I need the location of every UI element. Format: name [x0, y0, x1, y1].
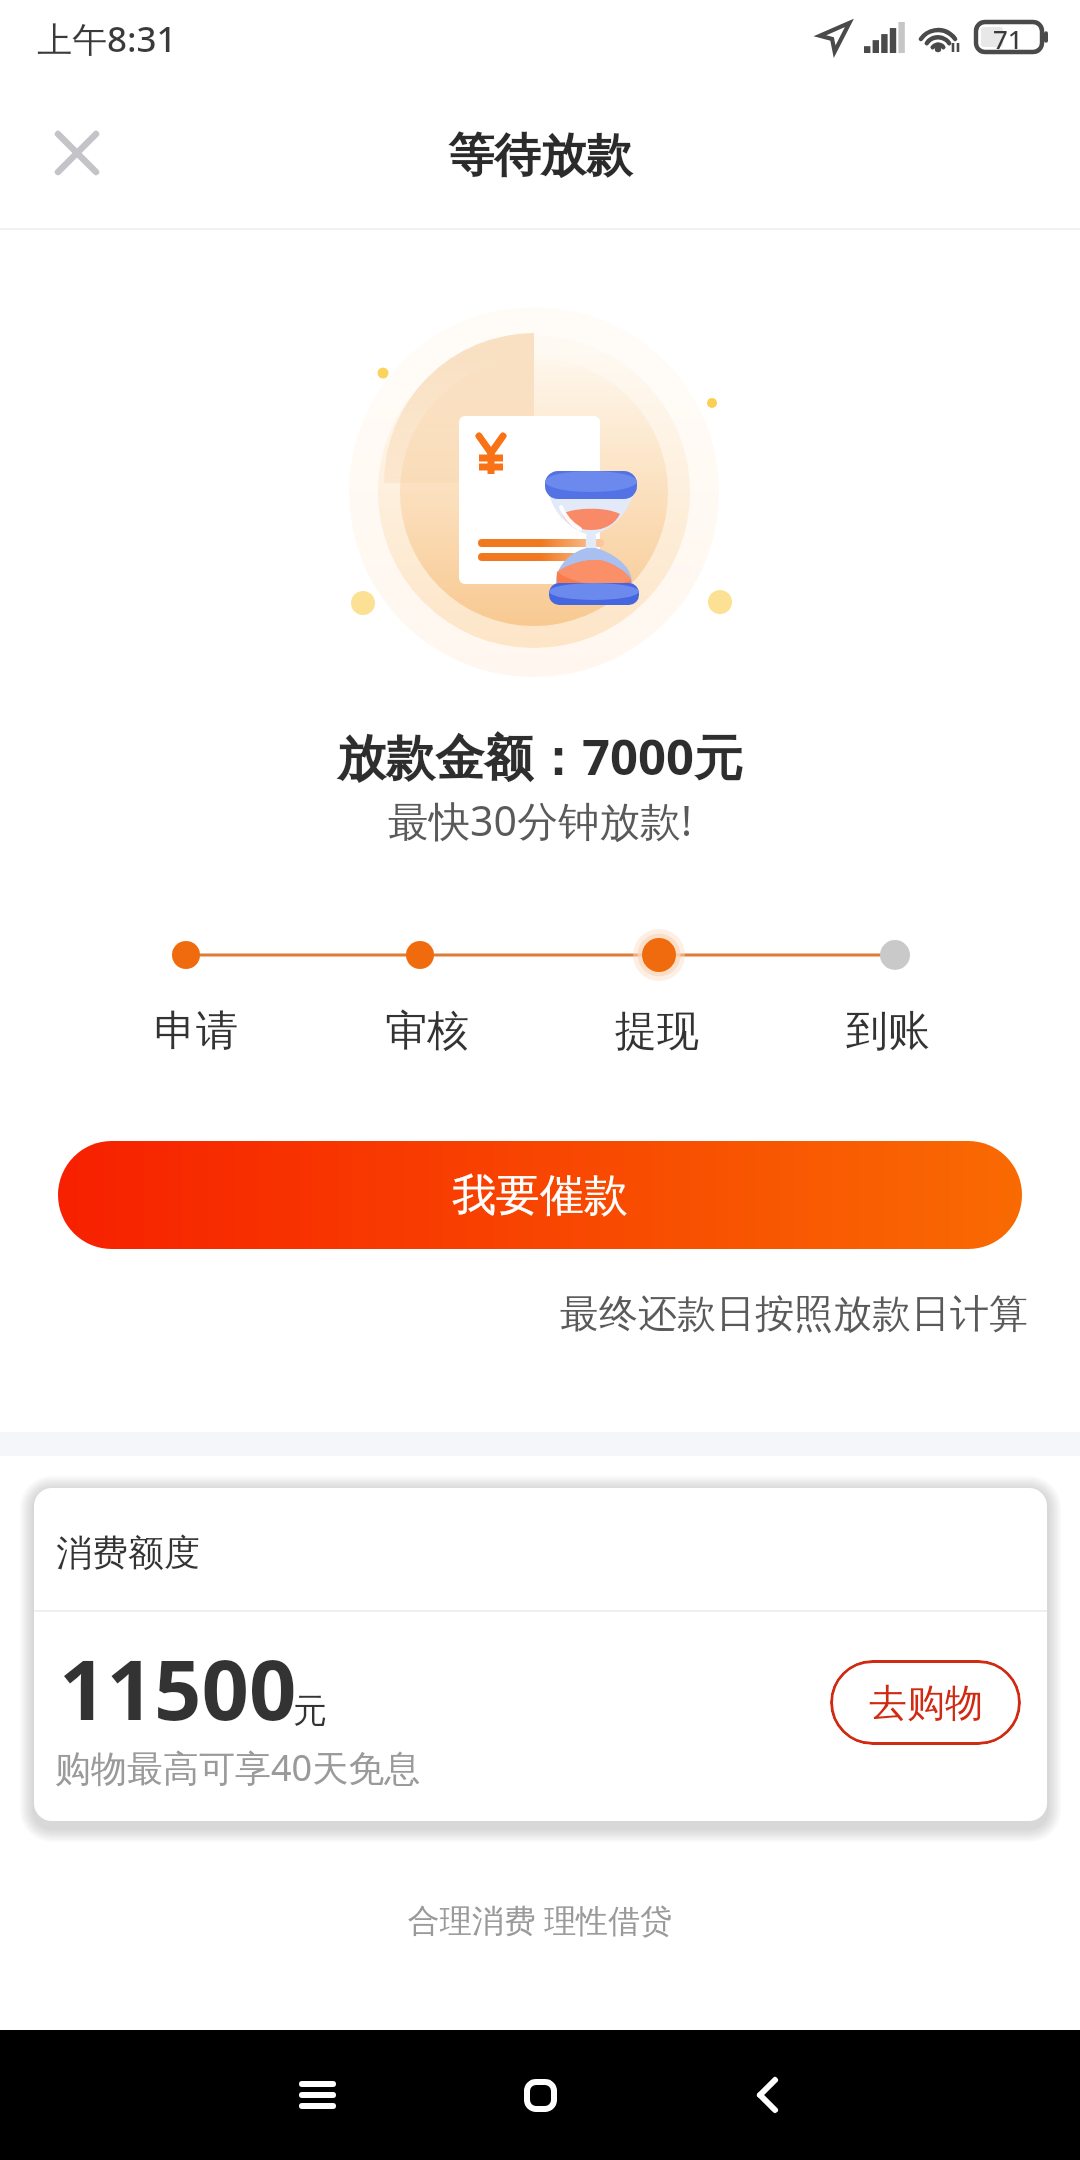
staticText: 最终还款日按照放款日计算: [0, 1289, 1028, 1338]
button[interactable]: Close: [29, 105, 125, 201]
staticText: 消费额度: [56, 1530, 200, 1575]
button[interactable]: Recent apps: [262, 2040, 372, 2150]
button[interactable]: Back: [712, 2040, 822, 2150]
button[interactable]: 我要催款: [58, 1141, 1022, 1249]
staticText: 到账: [818, 1005, 958, 1058]
staticText: 元: [293, 1689, 327, 1732]
staticText: 审核: [357, 1005, 497, 1058]
staticText: 我要催款: [452, 1168, 628, 1223]
staticText: 11500: [59, 1631, 297, 1744]
staticText: 合理消费 理性借贷: [0, 1898, 1080, 1942]
button[interactable]: 去购物: [830, 1660, 1021, 1745]
staticText: 申请: [126, 1005, 266, 1058]
staticText: 最快30分钟放款!: [0, 792, 1080, 848]
button[interactable]: Home: [485, 2040, 595, 2150]
staticText: 购物最高可享40天免息: [55, 1743, 421, 1792]
staticText: 去购物: [869, 1679, 983, 1727]
staticText: 放款金额：7000元: [0, 723, 1080, 790]
staticText: 71: [993, 21, 1023, 53]
staticText: 提现: [587, 1005, 727, 1058]
staticText: 上午8:31: [37, 15, 177, 63]
staticText: 等待放款: [448, 127, 632, 185]
